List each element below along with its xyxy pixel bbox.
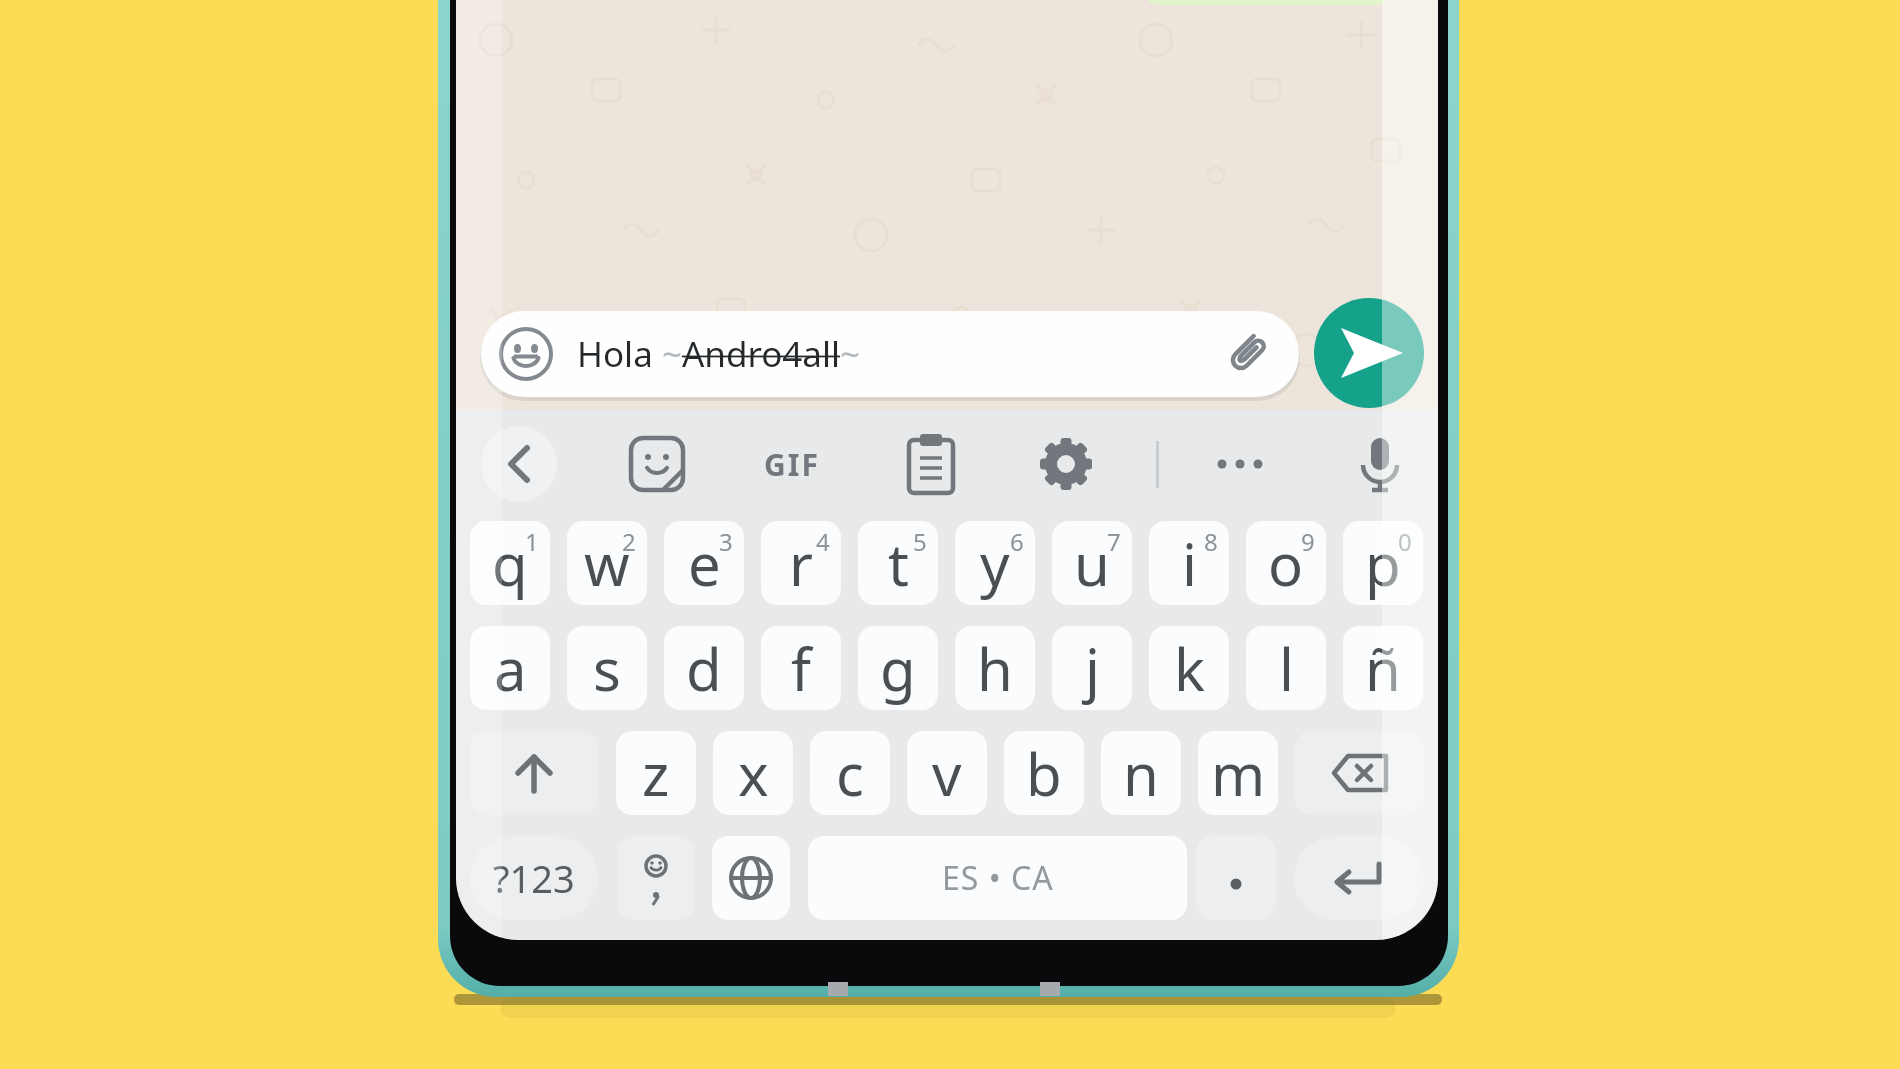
staticText: d <box>686 629 722 708</box>
staticText: ?123 <box>493 852 575 904</box>
staticText: GIF <box>764 444 820 485</box>
staticText: g <box>880 629 916 708</box>
staticText: 8 <box>1204 525 1218 558</box>
button[interactable]: t <box>858 521 938 605</box>
staticText: t <box>888 524 909 603</box>
button[interactable]: u <box>1052 521 1132 605</box>
button[interactable] <box>489 434 549 494</box>
button[interactable]: j <box>1052 626 1132 710</box>
button[interactable]: r <box>761 521 841 605</box>
staticText: ES • CA <box>942 856 1054 900</box>
staticText: c <box>836 734 864 813</box>
button[interactable] <box>1196 836 1276 920</box>
staticText: v <box>932 734 962 813</box>
button[interactable] <box>1314 298 1424 408</box>
staticText: y <box>980 524 1010 603</box>
button[interactable]: k <box>1149 626 1229 710</box>
button[interactable] <box>617 836 695 920</box>
button[interactable]: s <box>567 626 647 710</box>
staticText: k <box>1174 629 1205 708</box>
staticText: ñ <box>1365 629 1401 708</box>
staticText: 5 <box>913 525 927 558</box>
button[interactable] <box>1350 434 1410 494</box>
button[interactable]: ?123 <box>470 836 598 920</box>
button[interactable]: m <box>1198 731 1278 815</box>
button[interactable] <box>1036 434 1096 494</box>
button[interactable]: d <box>664 626 744 710</box>
staticText: x <box>738 734 769 813</box>
button[interactable]: z <box>616 731 696 815</box>
button[interactable]: h <box>955 626 1035 710</box>
staticText: p <box>1365 524 1401 603</box>
button[interactable]: w <box>567 521 647 605</box>
staticText: b <box>1026 734 1062 813</box>
button[interactable]: x <box>713 731 793 815</box>
staticText: f <box>791 629 811 708</box>
button[interactable]: i <box>1149 521 1229 605</box>
button[interactable] <box>1294 836 1424 920</box>
staticText: w <box>584 524 630 603</box>
staticText: m <box>1211 734 1266 813</box>
button[interactable]: y <box>955 521 1035 605</box>
staticText: i <box>1182 524 1197 603</box>
button[interactable]: Hola ~Andro4all~ <box>481 311 1299 397</box>
button[interactable]: f <box>761 626 841 710</box>
staticText: a <box>494 629 527 708</box>
staticText: o <box>1268 524 1304 603</box>
button[interactable]: q <box>470 521 550 605</box>
staticText: Hola ~Andro4all~ <box>577 330 861 378</box>
staticText: 6 <box>1010 525 1024 558</box>
staticText: 3 <box>719 525 733 558</box>
button[interactable]: l <box>1246 626 1326 710</box>
staticText: 2 <box>622 525 636 558</box>
button[interactable] <box>712 836 790 920</box>
button[interactable]: p <box>1343 521 1423 605</box>
staticText: j <box>1085 629 1100 708</box>
button[interactable]: c <box>810 731 890 815</box>
button[interactable]: GIF <box>752 434 832 494</box>
button[interactable]: ñ <box>1343 626 1423 710</box>
button[interactable]: g <box>858 626 938 710</box>
staticText: q <box>492 524 528 603</box>
staticText: z <box>642 734 670 813</box>
button[interactable] <box>1295 731 1424 815</box>
button[interactable]: e <box>664 521 744 605</box>
button[interactable] <box>627 434 687 494</box>
button[interactable]: v <box>907 731 987 815</box>
staticText: l <box>1279 629 1294 708</box>
button[interactable]: o <box>1246 521 1326 605</box>
staticText: 7 <box>1107 525 1121 558</box>
button[interactable] <box>1210 434 1270 494</box>
button[interactable]: n <box>1101 731 1181 815</box>
staticText: 0 <box>1398 525 1412 558</box>
button[interactable] <box>470 731 598 815</box>
staticText: e <box>688 524 721 603</box>
staticText: h <box>977 629 1013 708</box>
button[interactable] <box>901 434 961 494</box>
staticText: n <box>1123 734 1159 813</box>
staticText: 4 <box>816 525 830 558</box>
button[interactable]: ES • CA <box>808 836 1187 920</box>
staticText: u <box>1074 524 1110 603</box>
staticText: 1 <box>525 525 539 558</box>
button[interactable]: b <box>1004 731 1084 815</box>
staticText: s <box>593 629 621 708</box>
staticText: r <box>789 524 813 603</box>
button[interactable]: a <box>470 626 550 710</box>
staticText: 9 <box>1301 525 1315 558</box>
